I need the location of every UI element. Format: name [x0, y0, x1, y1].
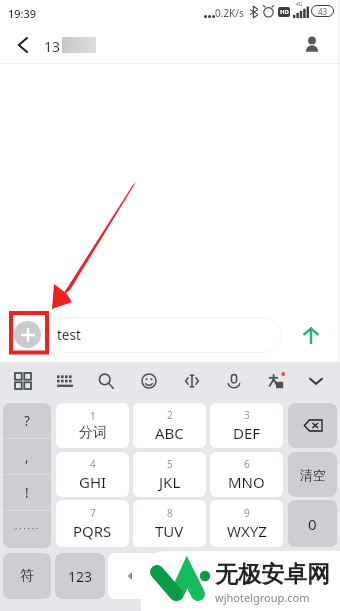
staticText: 5 [167, 457, 173, 471]
staticText: ABC [155, 423, 184, 443]
button[interactable]: 9 [210, 500, 283, 547]
staticText: wjhotelgroup.com [215, 590, 310, 605]
button[interactable]: 符 [3, 553, 51, 599]
button[interactable]: 4 [56, 452, 129, 497]
staticText: ✓ [294, 568, 307, 585]
button[interactable]: , [3, 439, 51, 474]
staticText: TUV [155, 521, 184, 541]
button[interactable]: Send [295, 319, 327, 351]
button[interactable]: 7 [56, 500, 129, 547]
button[interactable]: Emoji [132, 364, 166, 398]
staticText: 43 [318, 6, 328, 17]
staticText: 无极安卓网 [215, 560, 330, 589]
button[interactable] [288, 403, 337, 448]
staticText: 123 [68, 567, 93, 586]
staticText: 符 [20, 567, 34, 585]
button[interactable]: Contact profile [290, 26, 334, 64]
button[interactable]: 2 [133, 403, 206, 448]
button[interactable]: 0 [288, 500, 337, 547]
staticText: PQRS [73, 521, 112, 541]
staticText: 0.2K/s [215, 6, 244, 20]
button[interactable]: 6 [210, 452, 283, 497]
staticText: 7 [90, 506, 96, 520]
staticText: WXYZ [227, 521, 267, 541]
staticText: test [57, 326, 81, 344]
button[interactable]: 123 [55, 553, 105, 599]
button[interactable]: Cursor [175, 364, 209, 398]
button[interactable]: Hide keyboard [299, 364, 333, 398]
staticText: 1 [90, 409, 96, 423]
staticText: , [25, 448, 29, 466]
staticText: 0 [308, 514, 317, 534]
staticText: DEF [233, 423, 261, 443]
button[interactable]: 8 [133, 500, 206, 547]
staticText: 3 [244, 408, 250, 422]
button[interactable]: 1 [56, 403, 129, 448]
button[interactable]: Search [89, 364, 123, 398]
staticText: 清空 [300, 467, 326, 483]
button[interactable]: Panel [6, 364, 40, 398]
staticText: · · · · · · [15, 523, 39, 534]
button[interactable]: Space [108, 553, 260, 599]
staticText: ? [24, 412, 30, 430]
button[interactable]: 5 [133, 452, 206, 497]
staticText: 13 [44, 37, 61, 56]
button[interactable]: Add attachment [14, 321, 41, 348]
staticText: JKL [159, 472, 181, 492]
button[interactable]: 3 [210, 403, 283, 448]
staticText: 分词 [79, 424, 107, 442]
staticText: GHI [79, 472, 107, 492]
button[interactable]: 清空 [288, 452, 337, 497]
button[interactable]: ✓ [263, 553, 337, 599]
staticText: 6 [244, 457, 250, 471]
staticText: 9 [244, 506, 250, 520]
button[interactable]: Voice input [217, 364, 251, 398]
button[interactable]: test [48, 317, 282, 353]
staticText: HD [280, 8, 289, 16]
staticText: 4G [296, 1, 303, 8]
button[interactable]: Back [0, 26, 44, 64]
staticText: 8 [167, 506, 173, 520]
button[interactable]: ? [3, 403, 51, 438]
button[interactable]: Language [259, 364, 293, 398]
button[interactable]: ! [3, 475, 51, 510]
button[interactable]: Keyboard [48, 364, 82, 398]
staticText: 4 [90, 457, 96, 471]
staticText: ! [25, 484, 29, 502]
staticText: 2 [167, 408, 173, 422]
staticText: 19:39 [8, 6, 37, 21]
button[interactable]: · · · · · · [3, 511, 51, 546]
staticText: MNO [228, 472, 265, 492]
